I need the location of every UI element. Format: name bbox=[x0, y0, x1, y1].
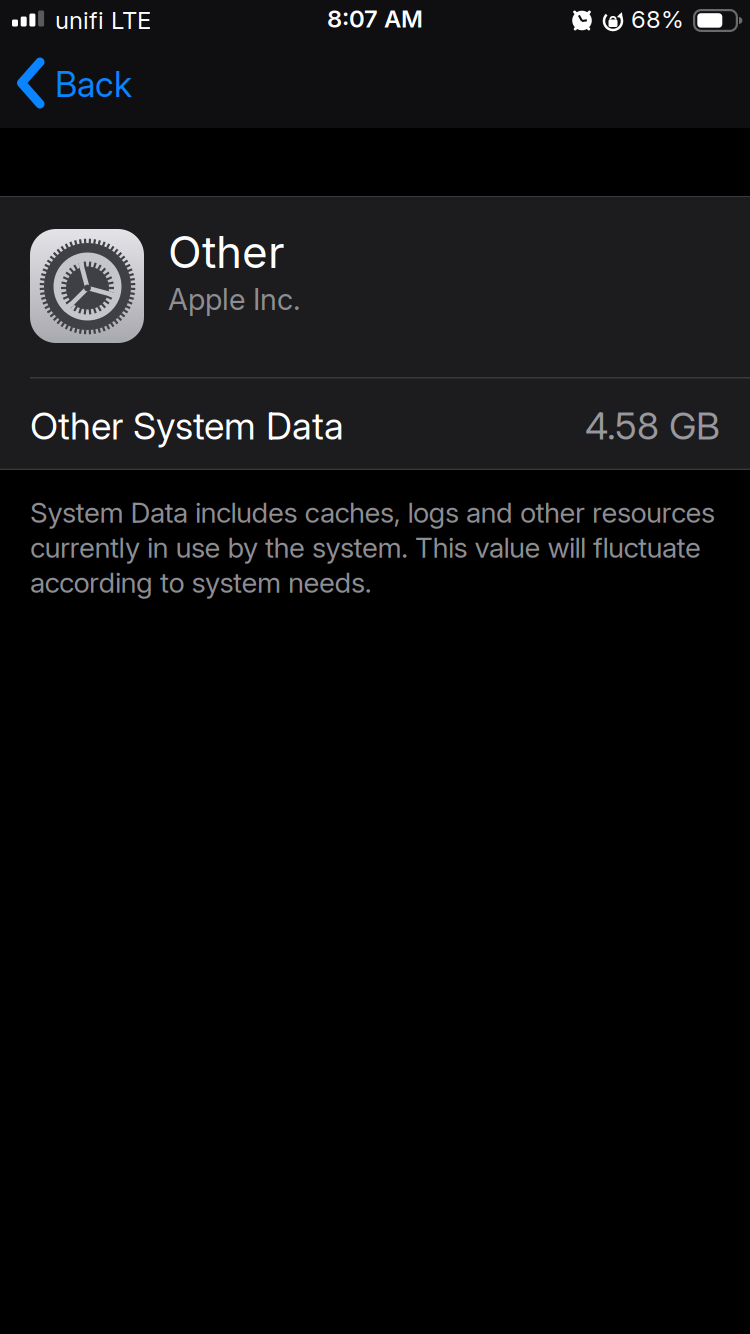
staticText: Apple Inc. bbox=[168, 282, 301, 317]
staticText: 68% bbox=[631, 5, 684, 33]
staticText: Other System Data bbox=[30, 404, 344, 448]
staticText: unifi LTE bbox=[55, 6, 151, 34]
button[interactable]: Back bbox=[0, 0, 160, 128]
staticText: 4.58 GB bbox=[585, 404, 720, 448]
staticText: Back bbox=[55, 64, 132, 105]
staticText: currently in use by the system. This val… bbox=[30, 531, 701, 564]
staticText: System Data includes caches, logs and ot… bbox=[30, 496, 715, 529]
staticText: 8:07 AM bbox=[327, 4, 423, 33]
staticText: Other bbox=[168, 226, 285, 278]
staticText: according to system needs. bbox=[30, 566, 371, 599]
